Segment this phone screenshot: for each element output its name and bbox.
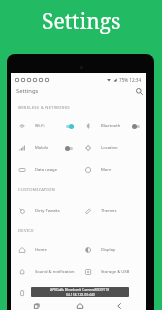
- button[interactable]: Recent apps: [31, 300, 43, 310]
- button[interactable]: Apps: [78, 285, 146, 301]
- button[interactable]: Storage & USB: [78, 264, 146, 280]
- staticText: Wi-Fi: [35, 123, 45, 129]
- staticText: Data usage: [35, 167, 57, 173]
- staticText: Display: [101, 247, 116, 253]
- staticText: Dirty Tweaks: [35, 208, 60, 214]
- staticText: Mobile: [35, 145, 49, 151]
- staticText: Apps: [101, 290, 111, 296]
- button[interactable]: Home: [11, 242, 78, 258]
- staticText: DEVICE: [18, 228, 34, 234]
- button[interactable]: Mobile: [11, 140, 78, 156]
- staticText: Sound & notification: [35, 269, 75, 275]
- button[interactable]: Back: [113, 300, 125, 310]
- button[interactable]: More: [78, 162, 146, 178]
- button[interactable]: Display: [78, 242, 146, 258]
- staticText: WIRELESS & NETWORKS: [18, 105, 70, 111]
- staticText: Settings: [42, 7, 121, 36]
- staticText: Settings: [16, 87, 39, 95]
- button[interactable]: Location: [78, 140, 146, 156]
- staticText: Bluetooth: [101, 123, 121, 129]
- button[interactable]: Data usage: [11, 162, 78, 178]
- staticText: Home: [35, 247, 47, 253]
- button[interactable]: Sound & notification: [11, 264, 78, 280]
- button[interactable]: Home: [74, 300, 86, 310]
- button[interactable]: Search: [132, 84, 146, 98]
- button[interactable]: Wi-Fi: [11, 118, 78, 134]
- button[interactable]: Themes: [78, 203, 146, 219]
- button[interactable]: Dirty Tweaks: [11, 203, 78, 219]
- staticText: Storage & USB: [101, 269, 130, 275]
- button[interactable]: Battery: [11, 285, 78, 301]
- staticText: Themes: [101, 208, 117, 214]
- staticText: Location: [101, 145, 118, 151]
- staticText: CUSTOMIZATION: [18, 187, 55, 193]
- staticText: APKGalls Bhonkanti CameraM339118: [50, 287, 110, 292]
- staticText: More: [101, 167, 112, 173]
- button[interactable]: Bluetooth: [78, 118, 146, 134]
- staticText: 75% 12:34: [119, 77, 142, 83]
- staticText: 04.15E.123.00:440: [66, 292, 95, 297]
